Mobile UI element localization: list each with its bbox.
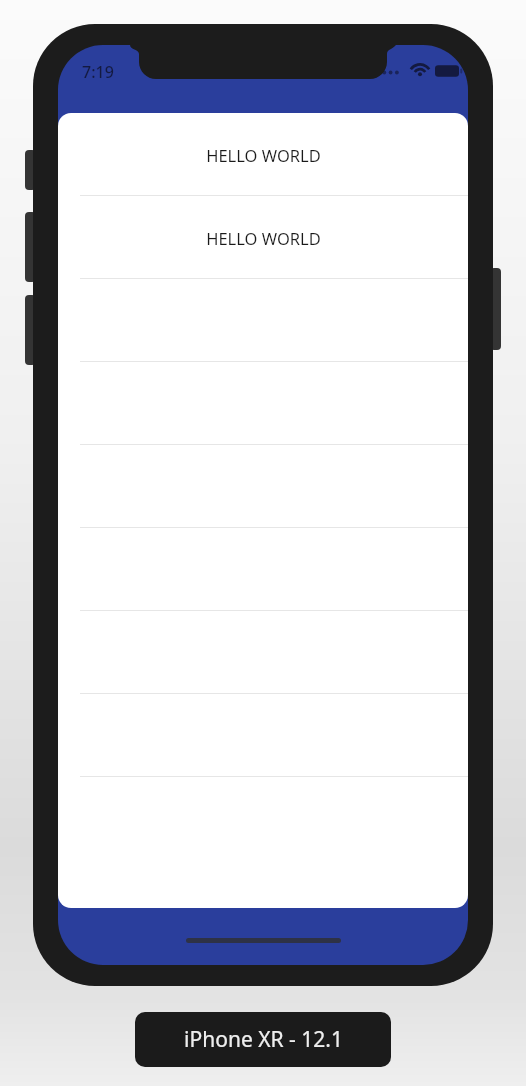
button[interactable]: Simulator device label iPhone XR 12.1 — [135, 1012, 391, 1067]
staticText: 7:19 — [82, 61, 114, 83]
button[interactable]: HELLO WORLD — [58, 113, 468, 196]
staticText: HELLO WORLD — [206, 144, 321, 166]
button[interactable]: HELLO WORLD — [58, 196, 468, 279]
staticText: HELLO WORLD — [206, 227, 321, 249]
staticText: iPhone XR - 12.1 — [184, 1025, 343, 1054]
